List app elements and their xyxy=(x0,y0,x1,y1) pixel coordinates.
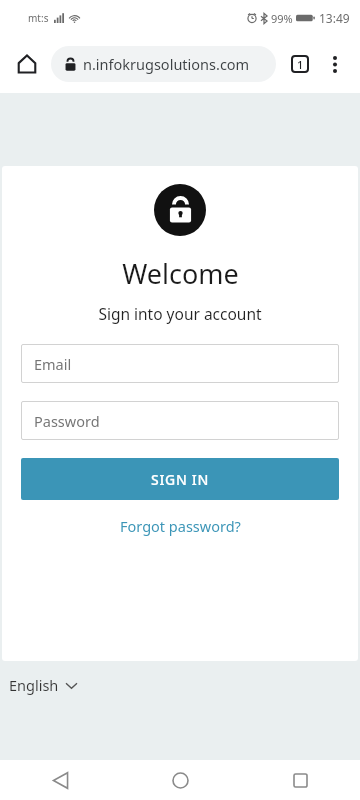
button[interactable]: Back xyxy=(0,760,120,800)
button[interactable]: Email xyxy=(21,344,339,383)
staticText: n.infokrugsolutions.com xyxy=(83,54,250,74)
staticText: mt:s xyxy=(28,11,49,25)
staticText: English xyxy=(9,675,59,695)
staticText: Welcome xyxy=(122,255,239,292)
button[interactable]: SIGN IN xyxy=(21,458,339,500)
button[interactable]: Home xyxy=(120,760,240,800)
button[interactable]: English xyxy=(4,670,85,700)
staticText: 1 xyxy=(297,57,304,72)
staticText: Password xyxy=(34,411,100,431)
button[interactable]: More options xyxy=(318,47,352,81)
button[interactable]: Forgot password? xyxy=(114,513,247,539)
staticText: SIGN IN xyxy=(151,470,210,489)
button[interactable]: Tabs xyxy=(282,46,318,82)
staticText: 13:49 xyxy=(319,10,350,26)
staticText: 99% xyxy=(271,11,293,26)
button[interactable]: Home xyxy=(8,45,46,83)
staticText: Email xyxy=(34,354,72,374)
staticText: Sign into your account xyxy=(98,303,262,324)
button[interactable]: Recent apps xyxy=(240,760,360,800)
button[interactable]: n.infokrugsolutions.com xyxy=(51,46,276,82)
button[interactable]: Password xyxy=(21,401,339,440)
staticText: Forgot password? xyxy=(120,516,241,536)
